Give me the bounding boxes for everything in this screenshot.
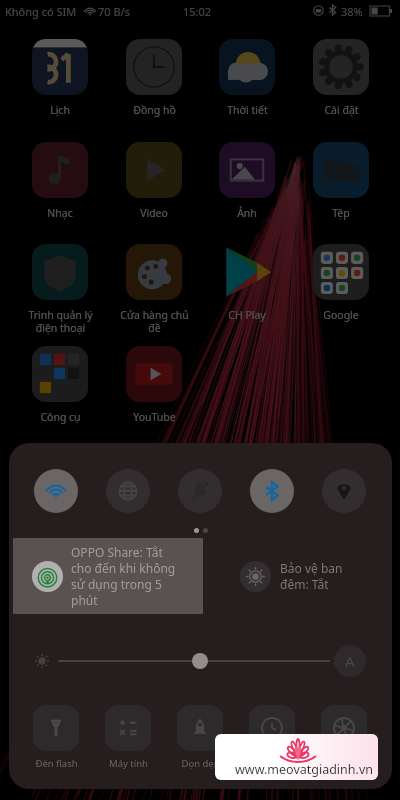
staticText: OPPO Share: Tắt cho đến khi không sử dụn… — [71, 544, 183, 608]
button[interactable]: Ảnh — [201, 142, 293, 220]
button[interactable]: Cửa hàng chủ đề — [108, 244, 200, 335]
button[interactable]: Quick toggle — [178, 469, 222, 513]
staticText: CH Play — [228, 308, 266, 322]
button[interactable]: Bảo vệ ban đêm: Tắt — [240, 538, 390, 614]
staticText: Tệp — [332, 206, 350, 220]
button[interactable]: Shortcut — [249, 705, 295, 770]
staticText: Trình quản lý điện thoại — [28, 308, 93, 335]
staticText: Nhạc — [47, 206, 73, 220]
button[interactable]: Quick toggle — [34, 469, 78, 513]
staticText: www.meovatgiadinh.vn — [235, 761, 373, 778]
button[interactable]: Auto brightness — [334, 645, 366, 677]
staticText: Công cụ — [40, 410, 81, 424]
button[interactable]: Quick toggle — [106, 469, 150, 513]
button[interactable]: Lịch — [14, 39, 106, 117]
button[interactable]: Đồng hồ — [108, 39, 200, 117]
staticText: Đồng hồ — [133, 103, 176, 117]
staticText: 38% — [341, 4, 363, 19]
button[interactable]: Dọn dẹp — [177, 705, 223, 770]
staticText: Đèn flash — [35, 757, 78, 770]
staticText: Google — [323, 308, 359, 322]
staticText: Video — [140, 206, 168, 220]
button[interactable]: Shortcut — [321, 705, 367, 770]
button[interactable]: Đèn flash — [33, 705, 79, 770]
button[interactable]: YouTube — [108, 346, 200, 424]
staticText: Thời tiết — [227, 103, 268, 117]
staticText: Dọn dẹp — [181, 757, 220, 770]
button[interactable]: Cài đặt — [295, 39, 387, 117]
staticText: Máy tính — [109, 757, 148, 770]
button[interactable]: Công cụ — [14, 346, 106, 424]
staticText: Ảnh — [237, 206, 257, 220]
button[interactable]: Tệp — [295, 142, 387, 220]
button[interactable]: Video — [108, 142, 200, 220]
button[interactable]: Quick toggle — [322, 469, 366, 513]
button[interactable]: Thời tiết — [201, 39, 293, 117]
staticText: Lịch — [50, 103, 70, 117]
button[interactable]: Trình quản lý điện thoại — [14, 244, 106, 335]
staticText: 70 B/s — [98, 4, 130, 19]
staticText: 15:02 — [183, 4, 212, 19]
button[interactable]: Nhạc — [14, 142, 106, 220]
button[interactable]: OPPO Share: Tắt cho đến khi không sử dụn… — [13, 538, 203, 614]
button[interactable]: CH Play — [201, 244, 293, 322]
staticText: Cửa hàng chủ đề — [120, 308, 189, 335]
staticText: Không có SIM — [5, 4, 77, 19]
button[interactable]: Google — [295, 244, 387, 322]
button[interactable]: Quick toggle — [250, 469, 294, 513]
staticText: Bảo vệ ban đêm: Tắt — [280, 560, 348, 592]
staticText: A — [345, 651, 355, 671]
staticText: Cài đặt — [324, 103, 359, 117]
staticText: YouTube — [133, 410, 176, 424]
button[interactable]: Máy tính — [105, 705, 151, 770]
